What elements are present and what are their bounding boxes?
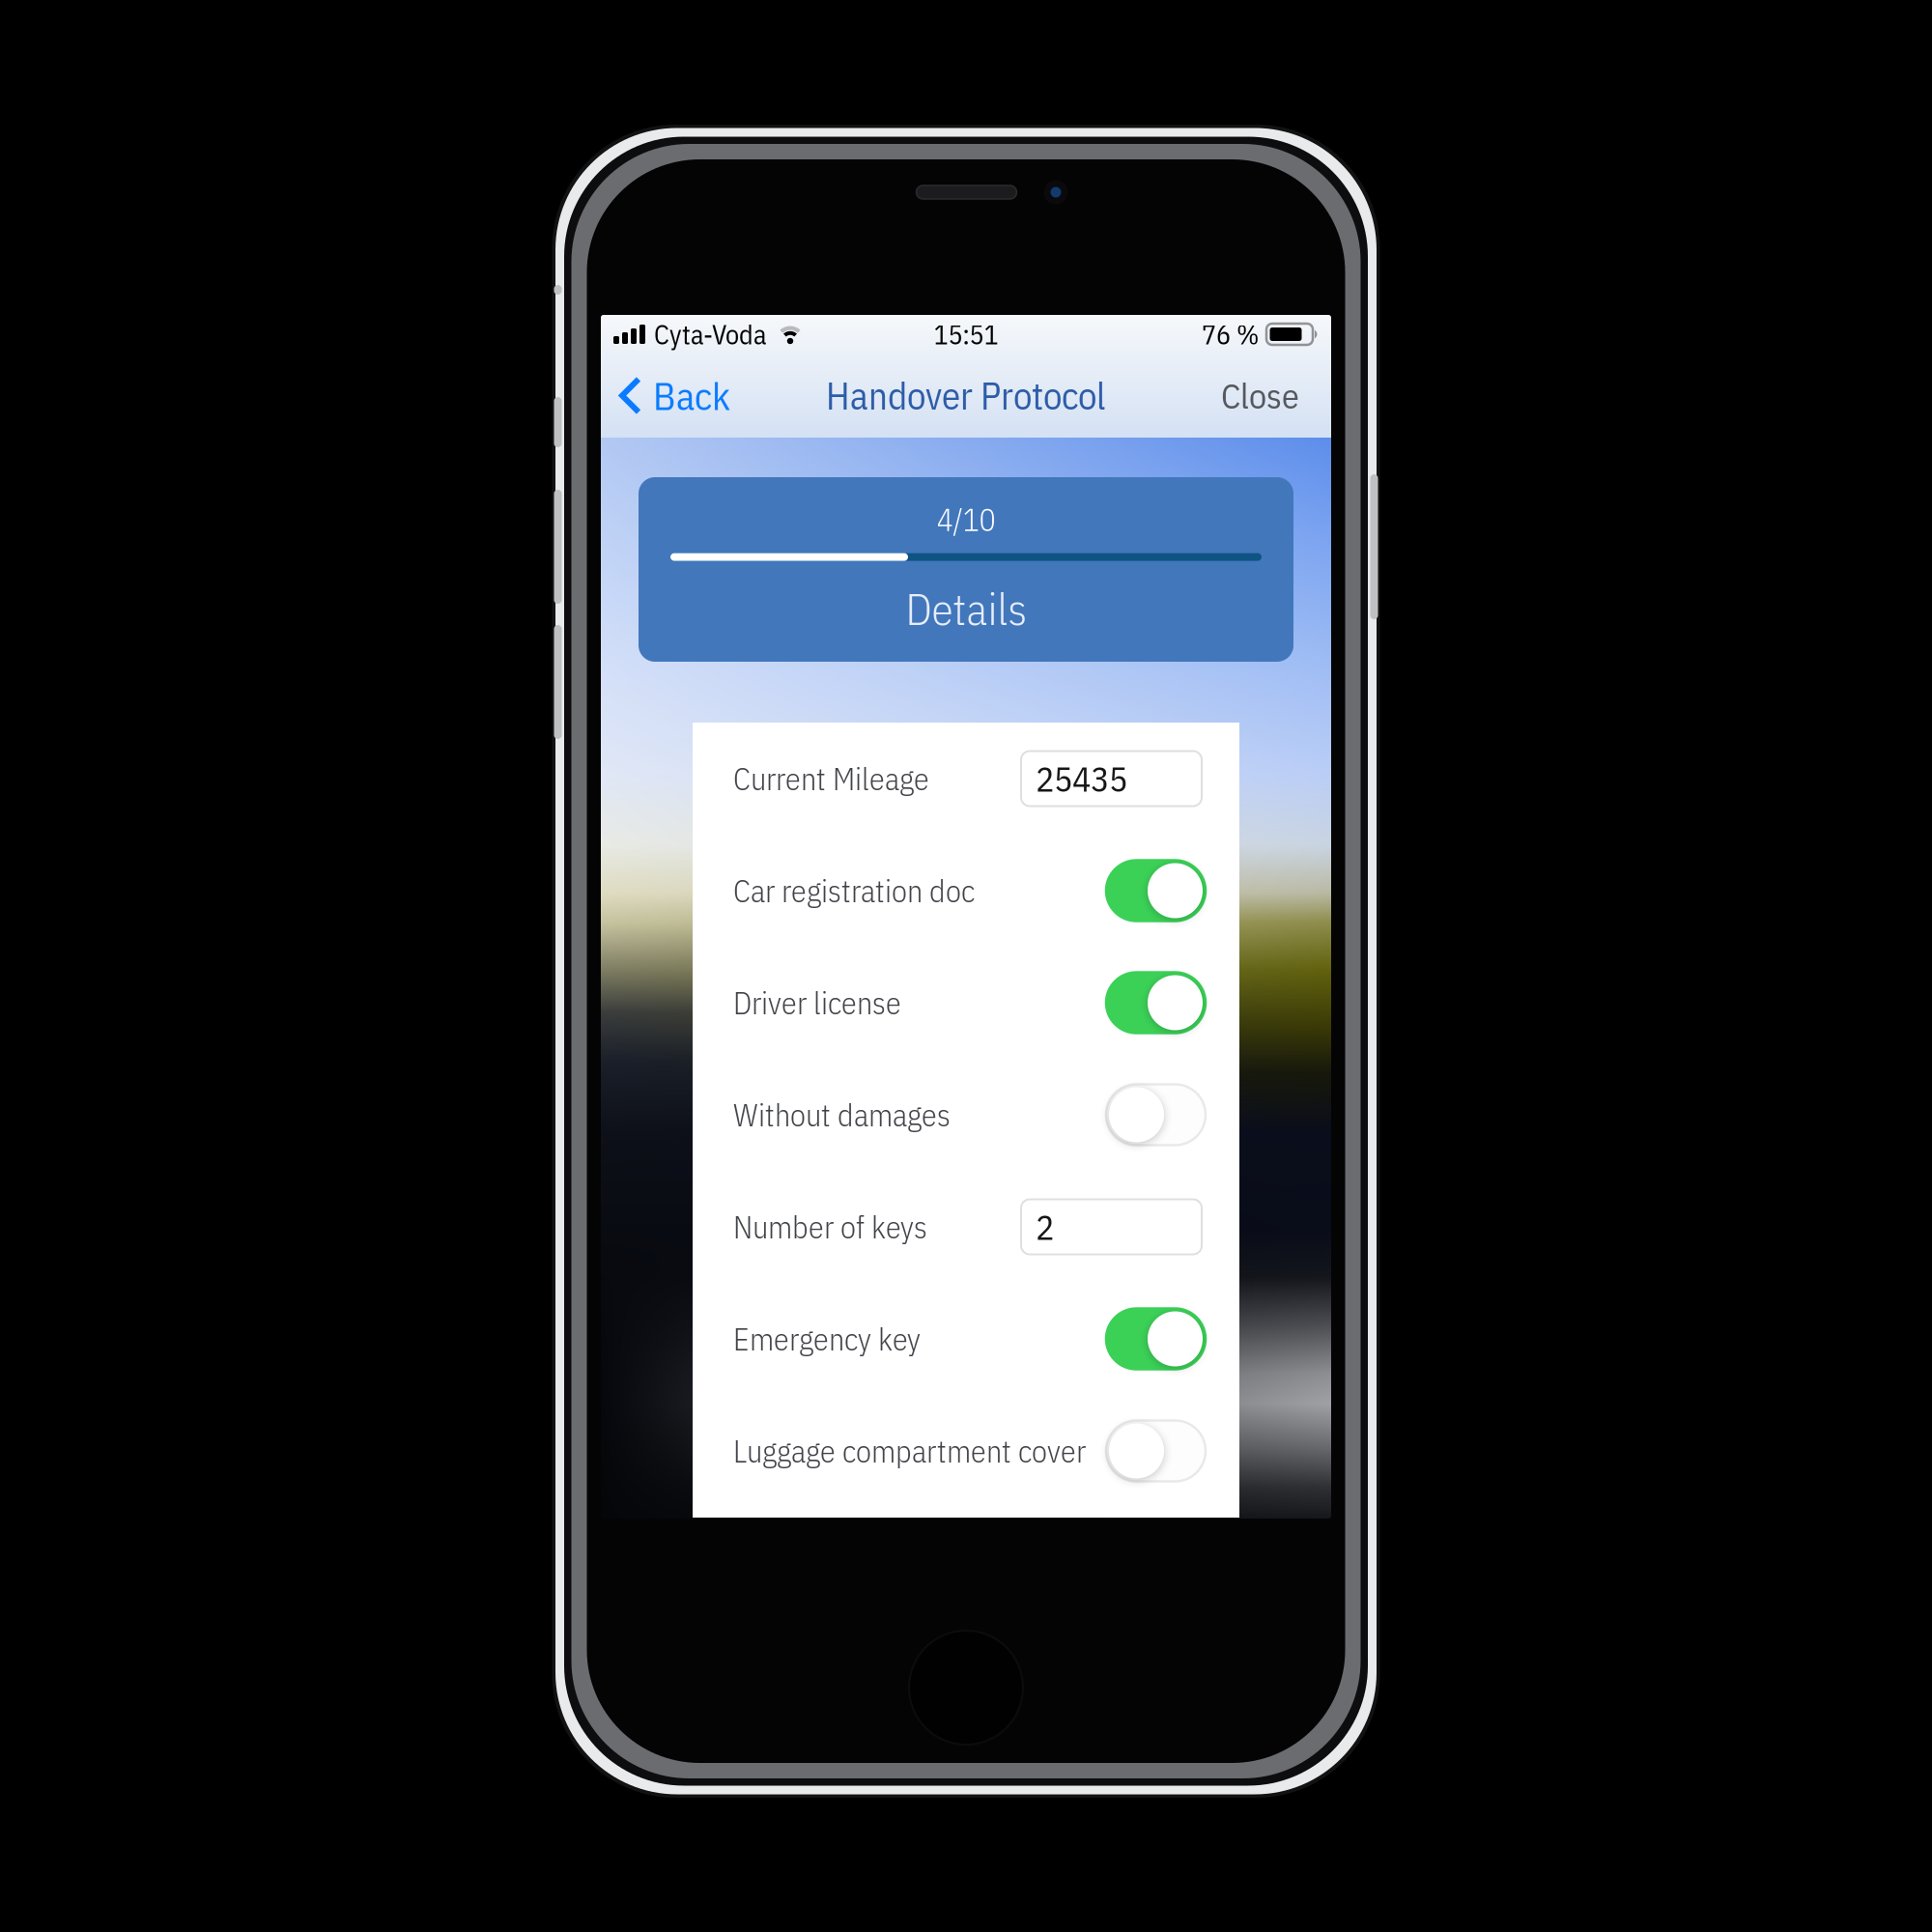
staticText: Details: [906, 580, 1026, 637]
staticText: Close: [1221, 373, 1299, 418]
button[interactable]: 2: [1021, 1199, 1202, 1254]
button[interactable]: Close: [1202, 354, 1331, 438]
staticText: Car registration doc: [733, 871, 975, 911]
button[interactable]: Without damages: [1106, 1084, 1206, 1145]
staticText: Handover Protocol: [826, 371, 1106, 420]
staticText: Without damages: [733, 1095, 951, 1135]
button[interactable]: Luggage compartment cover: [1106, 1421, 1206, 1481]
staticText: Emergency key: [733, 1319, 921, 1359]
staticText: Luggage compartment cover: [733, 1431, 1086, 1471]
button[interactable]: Car registration doc: [1106, 860, 1206, 921]
staticText: 25435: [1036, 756, 1127, 801]
staticText: Back: [653, 370, 730, 421]
button[interactable]: Driver license: [1106, 972, 1206, 1033]
button[interactable]: Back: [601, 354, 744, 438]
staticText: Driver license: [733, 983, 901, 1023]
staticText: Current Mileage: [733, 759, 929, 799]
staticText: Cyta-Voda: [654, 317, 767, 352]
staticText: 2: [1036, 1204, 1054, 1249]
staticText: 76 %: [1202, 317, 1259, 352]
button[interactable]: Emergency key: [1106, 1308, 1206, 1369]
staticText: Number of keys: [733, 1207, 927, 1247]
button[interactable]: 25435: [1021, 751, 1202, 806]
staticText: 15:51: [934, 317, 998, 352]
staticText: 4/10: [937, 499, 995, 540]
